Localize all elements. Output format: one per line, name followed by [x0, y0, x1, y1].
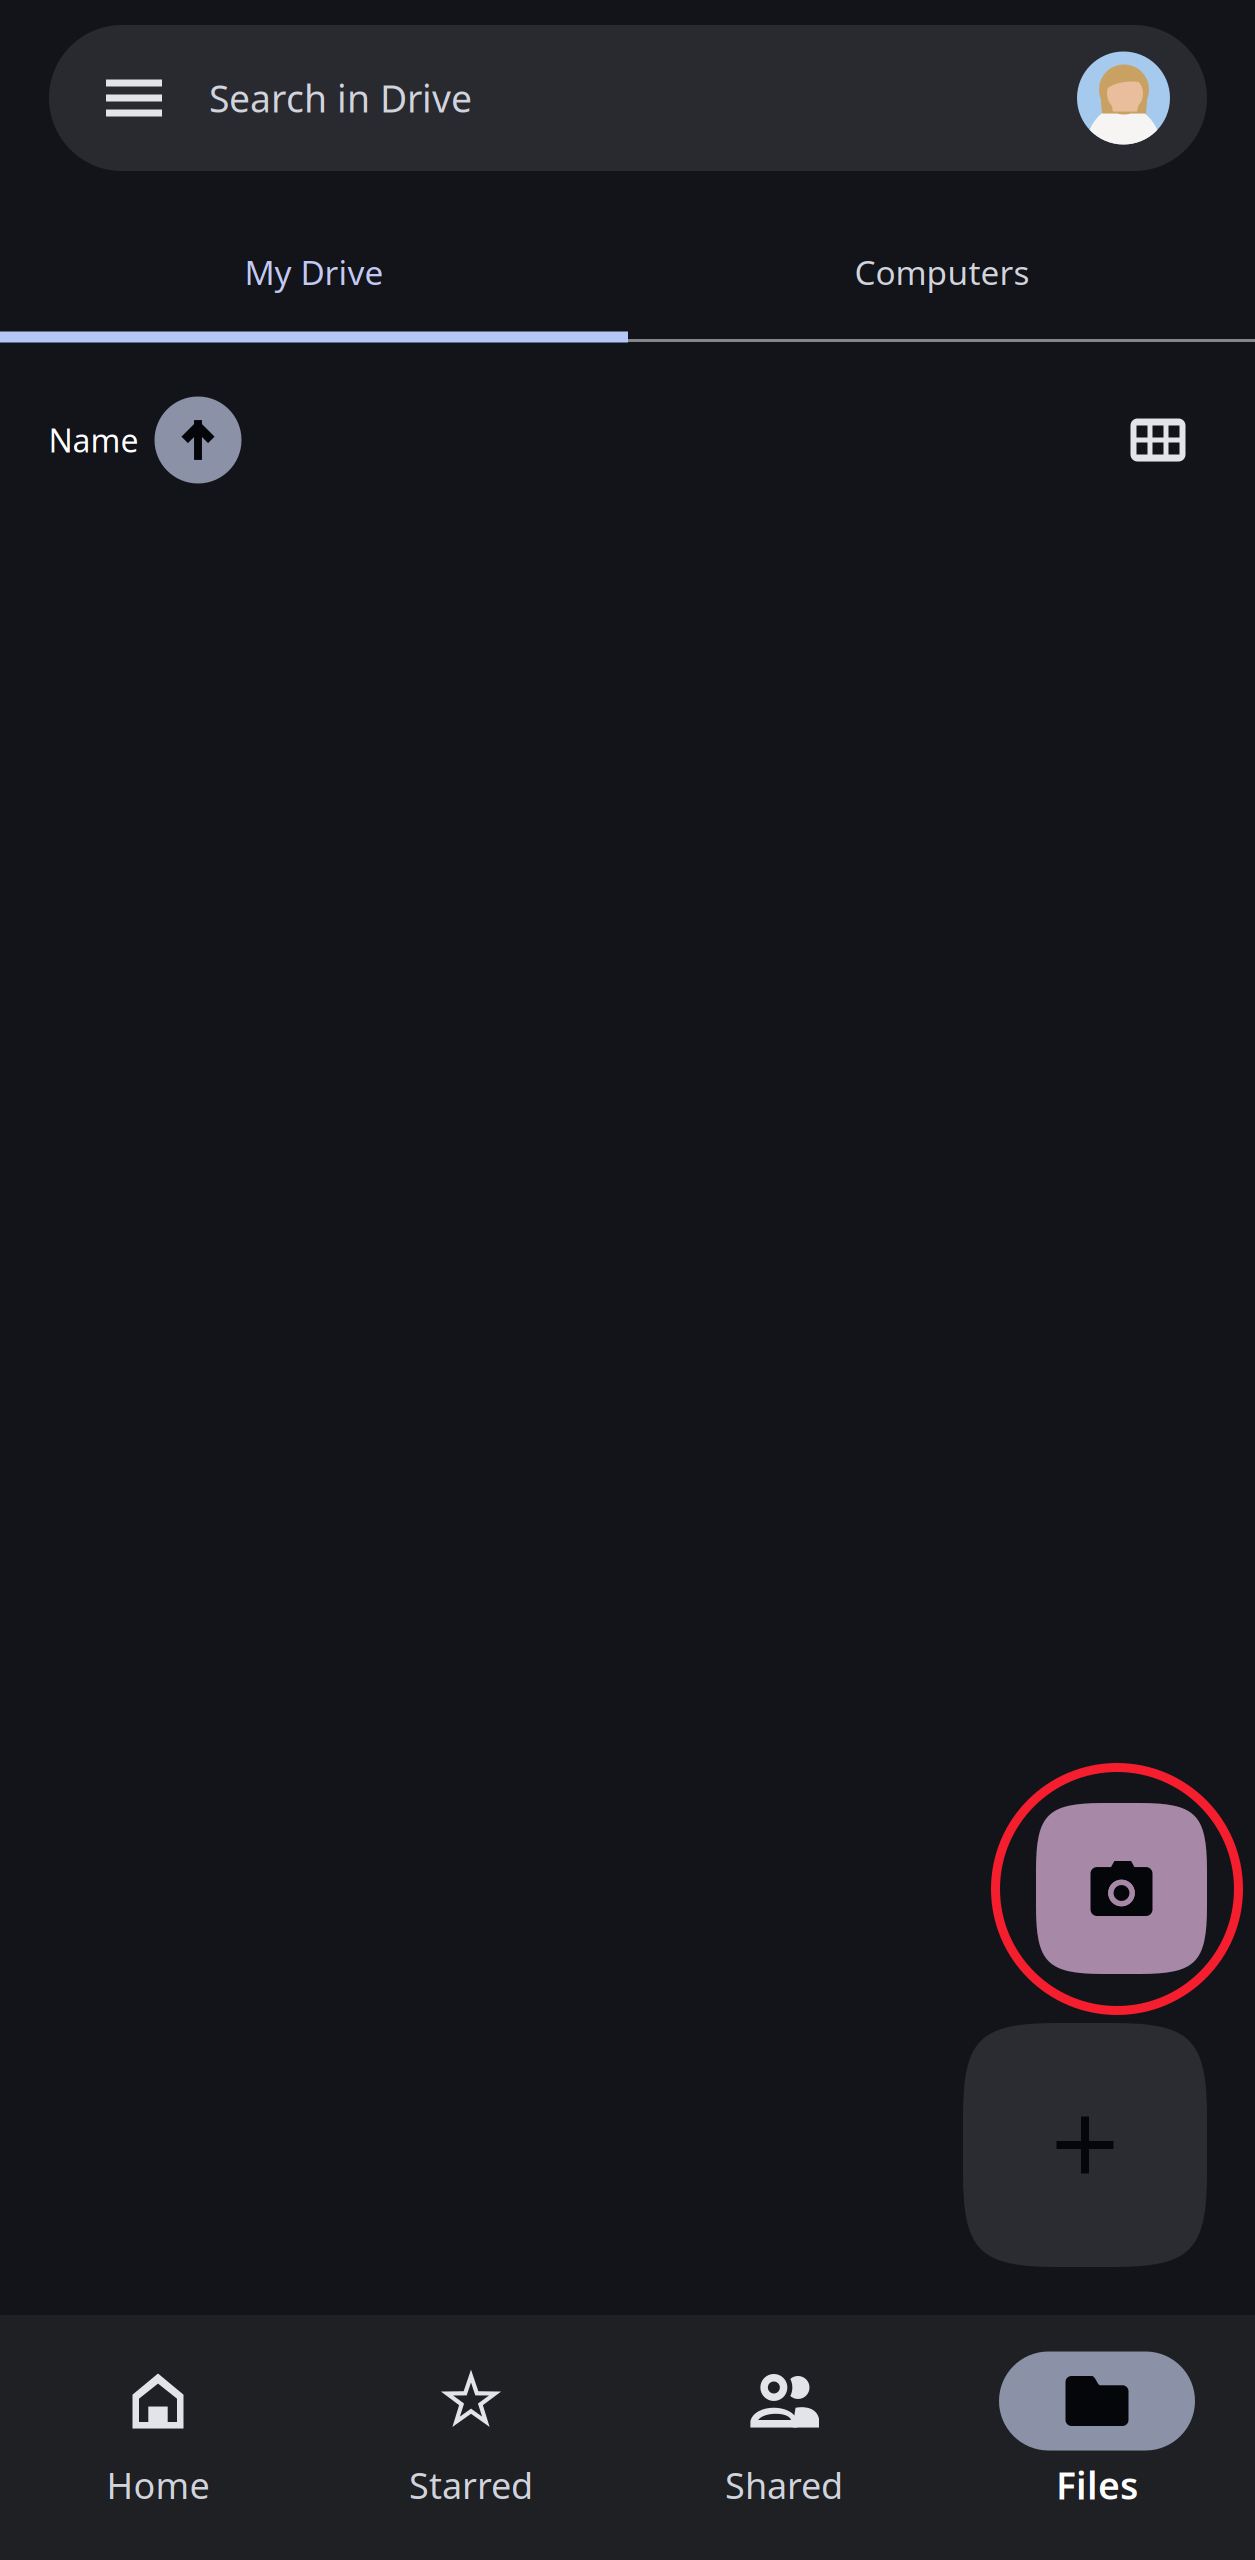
staticText: Starred: [409, 2461, 533, 2509]
button[interactable]: Create new file: [963, 2023, 1207, 2267]
staticText: Search in Drive: [209, 73, 472, 123]
staticText: Files: [1056, 2460, 1138, 2510]
button[interactable]: Search in Drive: [49, 25, 1207, 171]
button[interactable]: Shared: [627, 2315, 940, 2560]
button[interactable]: Name: [48, 396, 241, 483]
button[interactable]: Starred: [314, 2315, 627, 2560]
button[interactable]: Home: [1, 2315, 314, 2560]
staticText: Name: [48, 419, 138, 461]
staticText: Shared: [725, 2461, 843, 2509]
staticText: Home: [106, 2461, 209, 2509]
button[interactable]: My Drive: [0, 222, 627, 322]
button[interactable]: Computers: [628, 222, 1255, 322]
staticText: My Drive: [244, 250, 383, 294]
button[interactable]: Files: [940, 2315, 1253, 2560]
staticText: Computers: [854, 250, 1029, 294]
button[interactable]: Switch to grid view: [1130, 418, 1185, 461]
button[interactable]: Scan document with camera: [1036, 1803, 1207, 1974]
